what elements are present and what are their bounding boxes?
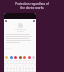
button[interactable]: Reaction [19, 56, 22, 59]
button[interactable]: Reaction [10, 56, 13, 59]
button[interactable]: Reaction [32, 56, 35, 59]
staticText: the device works [20, 6, 44, 10]
button[interactable]: Reaction [5, 56, 8, 59]
staticText: Protection regardless of [15, 2, 49, 6]
button[interactable]: Reaction [28, 56, 31, 59]
button[interactable]: Reaction [23, 56, 26, 59]
button[interactable]: Reaction [14, 56, 17, 59]
